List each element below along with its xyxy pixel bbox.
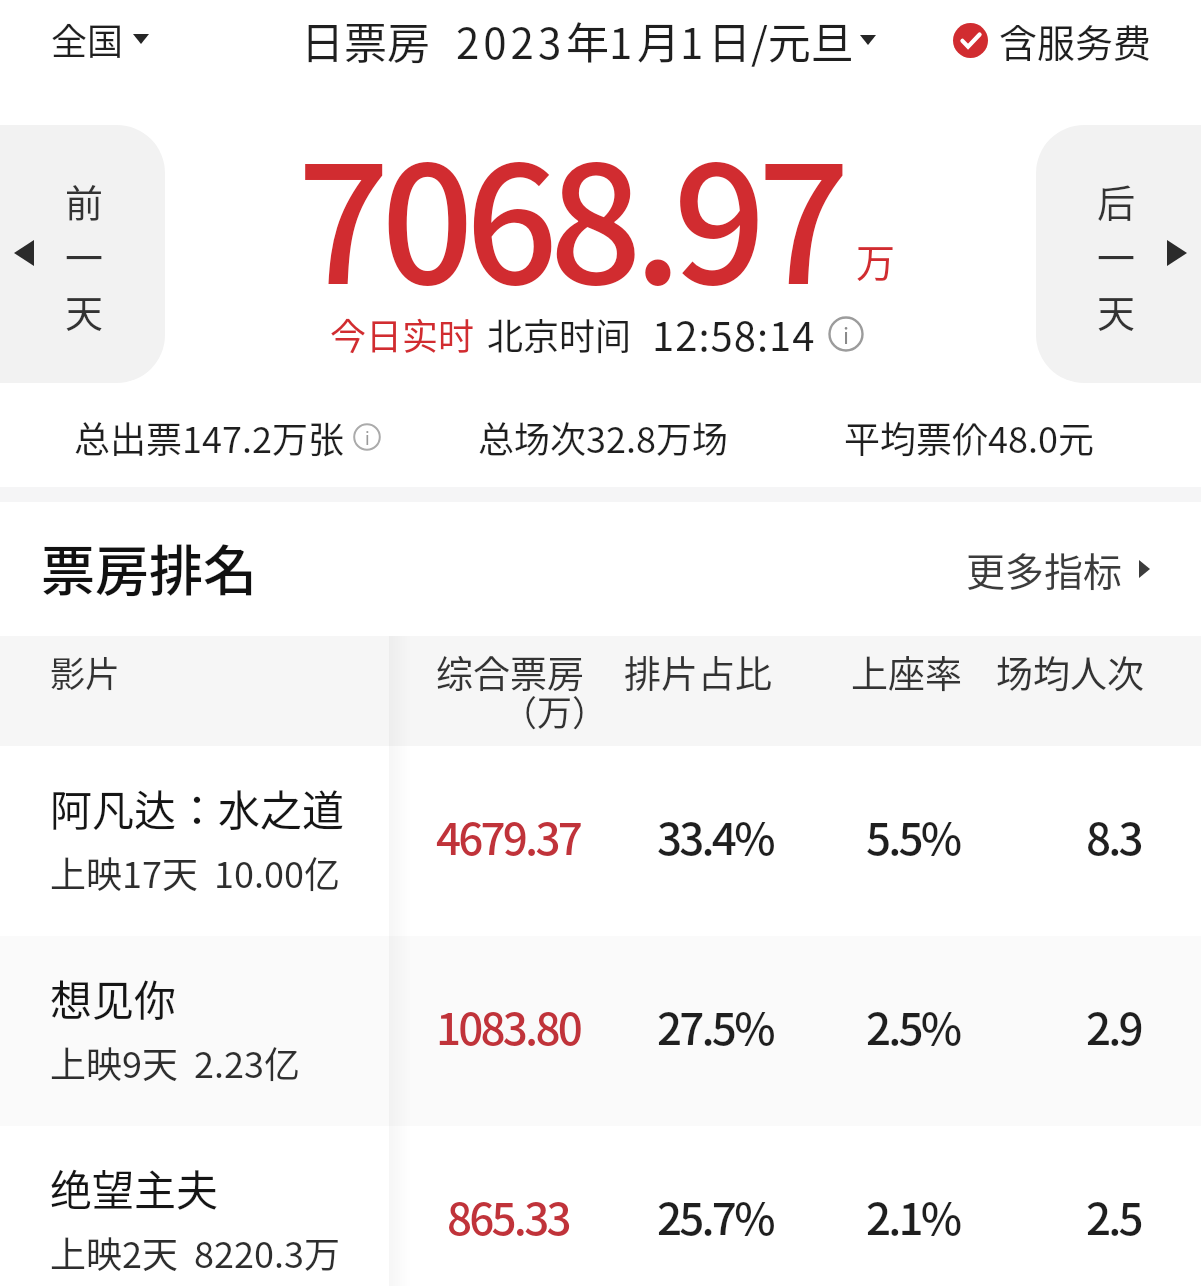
staticText: 一 — [65, 228, 104, 283]
staticText: 含服务费 — [999, 13, 1152, 68]
staticText: 1083.80 — [436, 994, 580, 1058]
staticText: 865.33 — [447, 1184, 569, 1248]
staticText: i — [843, 318, 850, 350]
staticText: 总出票147.2万张 — [74, 411, 344, 463]
button[interactable]: 说明 — [828, 316, 864, 352]
staticText: 1 — [680, 10, 708, 71]
staticText: 2.5 — [1086, 1184, 1141, 1248]
button[interactable]: 后一天 — [1036, 125, 1201, 383]
staticText: i — [365, 425, 370, 450]
staticText: 上座率 — [851, 645, 962, 699]
staticText: 2.9 — [1086, 994, 1141, 1058]
staticText: 今日实时 — [330, 308, 475, 360]
staticText: 场均人次 — [996, 645, 1144, 699]
staticText: 更多指标 — [966, 541, 1123, 597]
staticText: 1 — [609, 10, 637, 71]
staticText: 上映9天 2.23亿 — [50, 1036, 301, 1088]
staticText: 票房排名 — [41, 528, 257, 606]
staticText: 影片 — [50, 646, 121, 697]
button[interactable]: 前一天 — [0, 125, 165, 383]
button[interactable]: 总出票147.2万张 — [74, 411, 381, 463]
staticText: 5.5% — [866, 804, 960, 868]
staticText: 8.3 — [1086, 804, 1141, 868]
staticText: 33.4% — [657, 804, 773, 868]
staticText: 月 — [637, 9, 680, 71]
staticText: 绝望主夫 — [50, 1157, 219, 1218]
staticText: 一 — [1097, 228, 1136, 283]
staticText: 年 — [566, 9, 609, 71]
staticText: （万） — [502, 685, 608, 736]
staticText: 后 — [1097, 173, 1136, 228]
staticText: 北京时间 — [487, 308, 632, 360]
staticText: 阿凡达：水之道 — [50, 777, 345, 838]
button[interactable]: 含服务费 — [953, 13, 1152, 68]
staticText: 2.1% — [866, 1184, 960, 1248]
staticText: 天 — [65, 283, 104, 338]
staticText: 平均票价48.0元 — [844, 411, 1094, 463]
staticText: 想见你 — [50, 967, 177, 1028]
staticText: 上映2天 8220.3万 — [50, 1226, 341, 1278]
staticText: 7068.97 — [297, 95, 842, 331]
button[interactable]: 绝望主夫 — [0, 1126, 1201, 1286]
staticText: 前 — [65, 173, 104, 228]
staticText: 日/元旦 — [708, 9, 854, 71]
staticText: 12:58:14 — [652, 305, 816, 363]
staticText: 万 — [856, 232, 896, 288]
button[interactable]: 全国 — [51, 13, 149, 65]
staticText: 总场次32.8万场 — [478, 411, 728, 463]
button[interactable]: 日票房 — [301, 9, 876, 71]
staticText: 综合票房 — [436, 645, 584, 699]
staticText: 全国 — [51, 13, 124, 65]
staticText: 日票房 — [301, 9, 430, 71]
staticText: 天 — [1097, 283, 1136, 338]
staticText: 4679.37 — [436, 804, 580, 868]
button[interactable]: 更多指标 — [966, 541, 1150, 597]
button[interactable]: 阿凡达：水之道 — [0, 746, 1201, 936]
button[interactable]: 想见你 — [0, 936, 1201, 1126]
staticText: 25.7% — [657, 1184, 773, 1248]
staticText: 上映17天 10.00亿 — [50, 846, 341, 898]
staticText: 2.5% — [866, 994, 960, 1058]
staticText: 27.5% — [657, 994, 773, 1058]
staticText: 2023 — [456, 10, 566, 71]
staticText: 排片占比 — [624, 645, 772, 699]
